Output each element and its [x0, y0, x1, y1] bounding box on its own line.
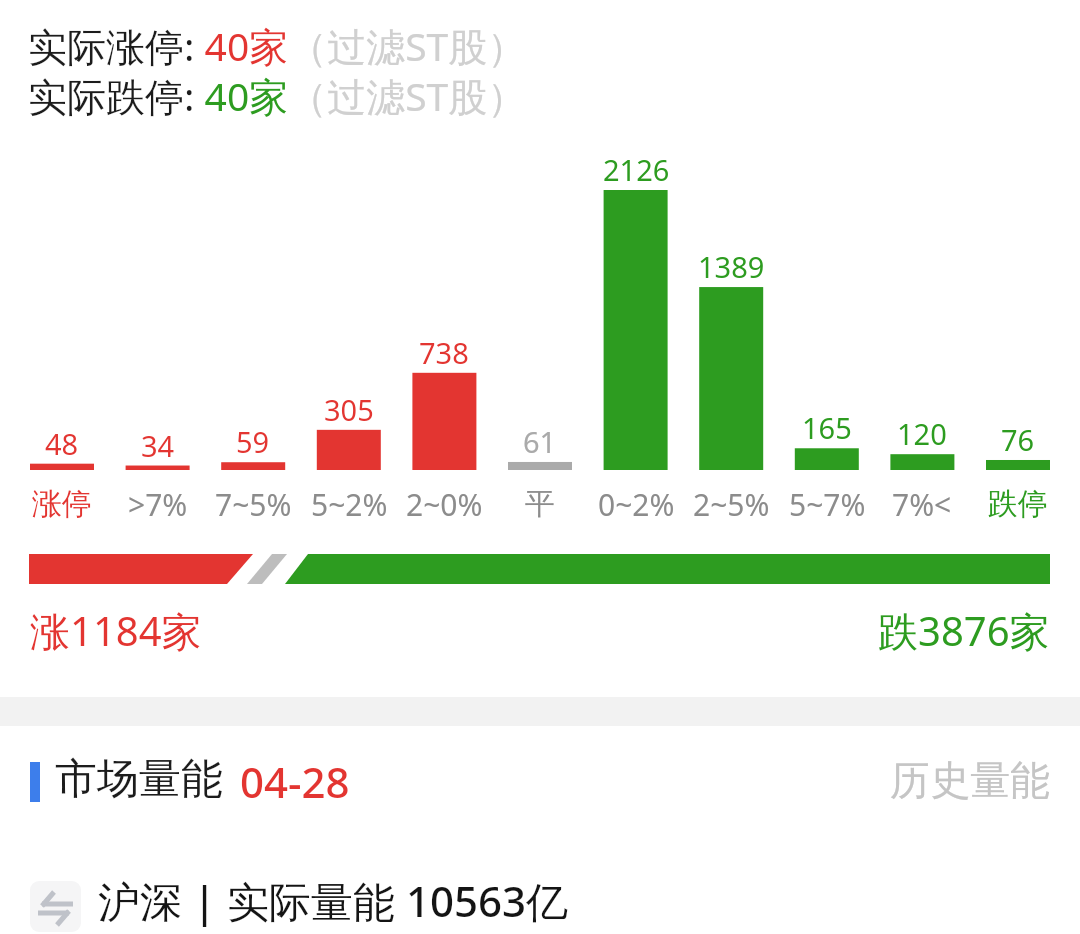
staticText: 历史量能	[890, 755, 1050, 805]
staticText: 跌停	[988, 485, 1048, 523]
staticText: 2~5%	[693, 484, 770, 524]
staticText: 市场量能	[55, 753, 223, 806]
staticText: 实际跌停: 40家（过滤ST股）	[28, 69, 527, 122]
staticText: 沪深 | 实际量能 10563亿	[98, 872, 569, 929]
staticText: 76	[1001, 420, 1035, 459]
staticText: 跌3876家	[878, 603, 1050, 658]
staticText: 165	[802, 408, 852, 447]
staticText: 1389	[698, 247, 765, 286]
staticText: 48	[45, 424, 79, 463]
staticText: 305	[324, 390, 374, 429]
staticText: 2~0%	[406, 484, 483, 524]
staticText: 738	[419, 333, 469, 372]
staticText: 120	[897, 414, 947, 453]
staticText: 平	[525, 485, 555, 523]
staticText: 涨停	[32, 485, 92, 523]
staticText: 34	[141, 426, 175, 465]
button[interactable]: 沪深 | 实际量能 10563亿	[30, 872, 569, 929]
staticText: 7%<	[892, 484, 952, 524]
staticText: 04-28	[240, 753, 350, 810]
staticText: 0~2%	[598, 484, 675, 524]
staticText: >7%	[128, 484, 188, 524]
staticText: 5~2%	[311, 484, 388, 524]
staticText: 7~5%	[215, 484, 292, 524]
staticText: 61	[523, 422, 557, 461]
staticText: 涨1184家	[30, 603, 202, 658]
staticText: 59	[236, 422, 270, 461]
staticText: 5~7%	[789, 484, 866, 524]
staticText: 实际涨停: 40家（过滤ST股）	[28, 19, 527, 72]
button[interactable]: 历史量能	[890, 755, 1050, 805]
staticText: 2126	[603, 150, 670, 189]
